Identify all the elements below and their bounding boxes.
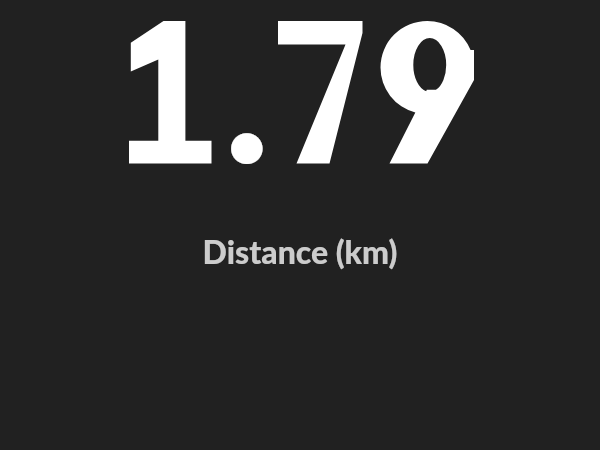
button[interactable]: Distance 1.79 kilometres [0,0,600,290]
staticText: Distance (km) [0,232,600,270]
staticText: . [224,0,270,203]
